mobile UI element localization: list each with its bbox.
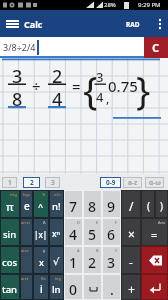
button[interactable]: E [84,219,101,245]
staticText: 9 [107,197,116,216]
button[interactable]: hyp [21,191,32,217]
button[interactable]: 9 [103,191,120,217]
button[interactable]: - [122,247,140,273]
button[interactable]: × [122,219,140,245]
button[interactable] [142,275,167,299]
staticText: 0 [69,280,78,299]
staticText: i [40,282,43,296]
staticText: 3 [96,68,104,80]
staticText: 6 [107,225,116,244]
staticText: / [129,198,134,214]
staticText: ( [147,199,150,213]
button[interactable]: 0 [65,275,82,299]
button[interactable]: 3/8÷2/4 [0,37,168,58]
button[interactable]: ( [142,191,154,217]
staticText: } [136,63,151,108]
button[interactable]: . [103,275,120,299]
button[interactable]: arctan [21,275,32,299]
button[interactable]: y [34,247,48,273]
staticText: nCr [54,192,61,197]
button[interactable]: + [122,275,140,299]
button[interactable]: 0-9 [100,177,121,188]
button[interactable]: xⁿ [50,219,63,245]
button[interactable]: C [103,247,120,273]
staticText: a-z [128,178,138,187]
button[interactable]: 8 [84,191,101,217]
button[interactable]: RAD [120,17,146,31]
button[interactable]: ) [156,191,167,217]
button[interactable]: % [34,191,48,217]
button[interactable]: 1 [2,177,17,188]
staticText: RAD [126,20,140,29]
button[interactable]: / [122,191,140,217]
button[interactable]: Re [34,275,48,299]
staticText: Calc [24,18,43,30]
staticText: x [39,256,44,268]
button[interactable]: 2 [23,177,40,188]
staticText: ^ [38,200,44,212]
button[interactable]: arcsin [21,219,32,245]
button[interactable] [142,247,167,273]
staticText: % [42,192,46,197]
button[interactable]: nCr [50,191,63,217]
staticText: 2 [52,64,63,80]
staticText: , [106,90,110,103]
button[interactable]: C [144,37,168,58]
staticText: = [72,76,81,92]
button[interactable]: tan [1,275,19,299]
staticText: ln [52,283,61,296]
staticText: Λ [43,220,46,225]
staticText: arccos [21,248,30,253]
staticText: Ans [158,220,165,225]
button[interactable]: a-z [123,177,142,188]
button[interactable] [6,20,19,28]
staticText: xⁿ [52,228,61,240]
staticText: 4 [69,225,78,244]
staticText: 28% [104,1,116,9]
staticText: tan [2,283,18,296]
staticText: α-ω [149,178,161,187]
button[interactable]: √ [50,247,63,273]
button[interactable]: D [65,219,82,245]
staticText: D [77,220,80,225]
staticText: E [96,220,99,225]
staticText: y [43,248,46,253]
button[interactable]: Ans [142,219,167,245]
staticText: { [83,63,98,108]
button[interactable]: Λ [34,219,48,245]
staticText: √ [53,256,60,268]
button[interactable]: F [103,219,120,245]
staticText: - [129,254,133,270]
staticText: 3 [12,64,23,80]
staticText: 9:29 PM [138,1,161,9]
staticText: π [6,199,14,214]
staticText: . [110,280,114,299]
staticText: F [115,220,118,225]
button[interactable]: trig [1,191,19,217]
staticText: B [96,248,99,253]
button[interactable]: α-ω [145,177,164,188]
staticText: 3 [107,253,116,272]
staticText: C [115,248,118,253]
staticText: cos [2,256,18,269]
staticText: 3/8÷2/4 [3,41,36,53]
staticText: e [24,199,30,213]
button[interactable]: B [84,247,101,273]
staticText: 4 [96,88,104,101]
staticText: 1 [8,178,12,187]
button[interactable]: log [50,275,63,299]
staticText: A [77,248,80,253]
staticText: 1 [69,253,78,272]
button[interactable] [84,275,101,299]
button[interactable]: sin [1,219,19,245]
staticText: arctan [21,276,30,281]
staticText: 5 [88,225,97,244]
staticText: 8 [12,87,23,103]
button[interactable]: cos [1,247,19,273]
staticText: log [55,276,61,281]
button[interactable] [152,17,166,31]
button[interactable]: arccos [21,247,32,273]
button[interactable]: A [65,247,82,273]
button[interactable]: 7 [65,191,82,217]
button[interactable]: 3 [45,177,60,188]
